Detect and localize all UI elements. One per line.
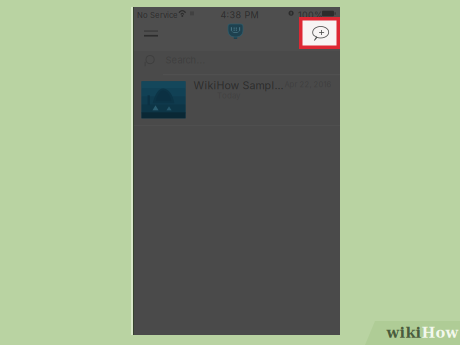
staticText: How — [421, 324, 458, 341]
staticText: wiki — [386, 324, 421, 341]
staticText: WikiHow Sampl... — [193, 79, 283, 92]
button[interactable]: WikiHow Sampl... — [133, 75, 340, 125]
staticText: No Service — [137, 10, 178, 20]
staticText: 100% — [298, 10, 323, 21]
button[interactable]: Menu — [136, 21, 166, 45]
staticText: 4:38 PM — [220, 9, 258, 20]
button[interactable]: New message — [299, 17, 340, 49]
